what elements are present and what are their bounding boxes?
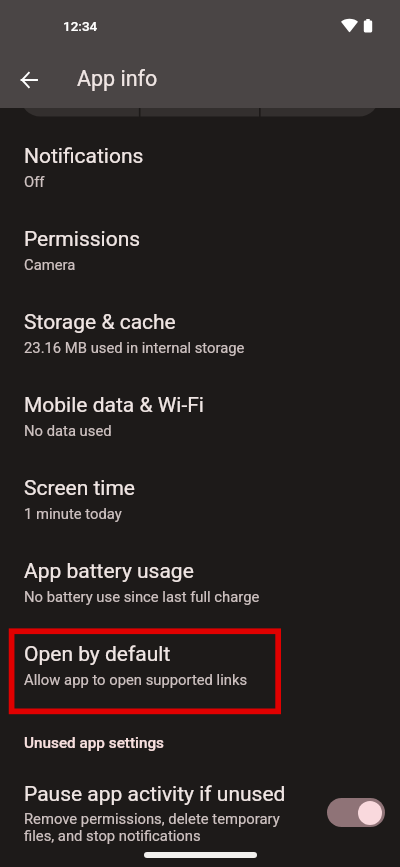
staticText: Notifications (24, 144, 144, 169)
button[interactable]: Pause app activity if unused (0, 782, 400, 845)
button[interactable]: Navigate back (4, 53, 54, 103)
button[interactable]: Open by default (0, 628, 400, 711)
button[interactable]: Notifications (0, 130, 400, 213)
staticText: Pause app activity if unused (24, 782, 286, 807)
staticText: App info (77, 66, 158, 91)
staticText: No battery use since last full charge (24, 588, 260, 605)
staticText: Camera (24, 256, 76, 273)
button[interactable]: Storage & cache (0, 296, 400, 379)
button[interactable]: Permissions (0, 213, 400, 296)
staticText: Off (24, 173, 45, 190)
staticText: Storage & cache (24, 310, 176, 335)
staticText: Screen time (24, 476, 135, 501)
staticText: Unused app settings (24, 734, 164, 752)
staticText: Allow app to open supported links (24, 671, 248, 688)
staticText: 1 minute today (24, 505, 122, 522)
staticText: Permissions (24, 227, 141, 252)
staticText: Open by default (24, 642, 171, 667)
staticText: App battery usage (24, 559, 194, 584)
staticText: 12:34 (63, 18, 98, 34)
button[interactable]: Mobile data & Wi-Fi (0, 379, 400, 462)
button[interactable]: Pause app activity if unused toggle (327, 798, 385, 827)
staticText: Remove permissions, delete temporary fil… (24, 810, 288, 845)
staticText: 23.16 MB used in internal storage (24, 339, 245, 356)
button[interactable]: App battery usage (0, 545, 400, 628)
staticText: No data used (24, 422, 112, 439)
staticText: Mobile data & Wi-Fi (24, 393, 204, 418)
button[interactable]: Screen time (0, 462, 400, 545)
